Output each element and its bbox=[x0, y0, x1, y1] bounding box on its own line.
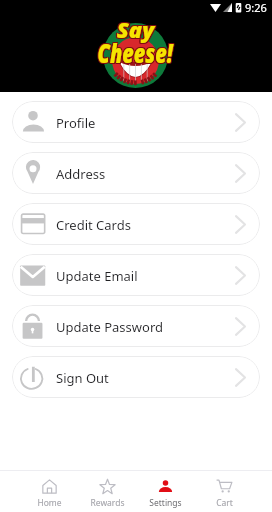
staticText: Address bbox=[56, 165, 106, 183]
button[interactable]: Profile bbox=[12, 101, 260, 143]
staticText: Say bbox=[117, 17, 155, 46]
staticText: 9:26 bbox=[245, 0, 267, 14]
staticText: Profile bbox=[56, 114, 96, 132]
staticText: Cheese! bbox=[99, 37, 175, 73]
staticText: Say bbox=[118, 16, 157, 44]
button[interactable]: Credit Cards bbox=[12, 203, 260, 245]
button[interactable]: Home bbox=[20, 471, 78, 512]
button[interactable]: Update Password bbox=[12, 305, 260, 347]
staticText: Say bbox=[118, 14, 157, 43]
staticText: Say bbox=[115, 17, 154, 46]
button[interactable]: Sign Out bbox=[12, 356, 260, 398]
staticText: Cheese! bbox=[98, 34, 173, 70]
staticText: Settings bbox=[149, 497, 182, 509]
staticText: Say bbox=[117, 16, 155, 44]
staticText: Cheese! bbox=[98, 37, 173, 73]
staticText: Cheese! bbox=[99, 35, 175, 72]
staticText: Say bbox=[115, 14, 154, 43]
button[interactable]: Update Email bbox=[12, 254, 260, 296]
staticText: Say bbox=[115, 16, 154, 44]
staticText: Say bbox=[118, 17, 157, 46]
staticText: Sign Out bbox=[56, 369, 109, 387]
staticText: Update Password bbox=[56, 318, 163, 336]
staticText: Update Email bbox=[56, 267, 138, 285]
staticText: Cheese! bbox=[96, 34, 172, 70]
staticText: Cheese! bbox=[96, 37, 172, 73]
staticText: Say bbox=[117, 14, 155, 43]
button[interactable]: Settings bbox=[136, 471, 195, 512]
staticText: Cart bbox=[216, 497, 233, 509]
button[interactable]: Cart bbox=[195, 471, 254, 512]
staticText: Rewards bbox=[90, 497, 125, 509]
staticText: Home bbox=[37, 497, 62, 509]
button[interactable]: Address bbox=[12, 152, 260, 194]
staticText: Credit Cards bbox=[56, 216, 131, 234]
staticText: Cheese! bbox=[96, 35, 172, 72]
staticText: Cheese! bbox=[98, 35, 173, 72]
button[interactable]: Rewards bbox=[78, 471, 136, 512]
staticText: Cheese! bbox=[99, 34, 175, 70]
